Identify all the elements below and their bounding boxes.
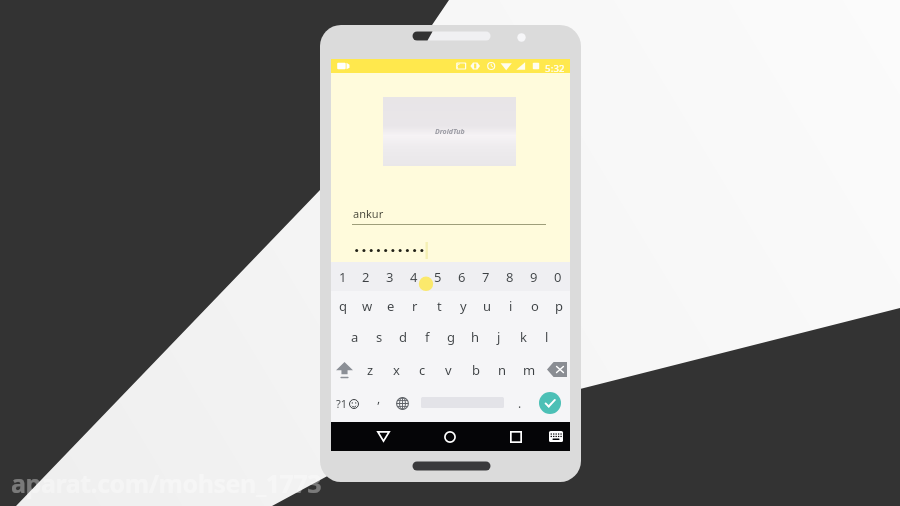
button[interactable]: v bbox=[435, 353, 462, 386]
button[interactable]: Change language bbox=[394, 395, 410, 411]
staticText: 8 bbox=[506, 268, 514, 286]
staticText: r bbox=[412, 297, 418, 315]
staticText: ankur bbox=[353, 206, 384, 221]
staticText: o bbox=[531, 297, 539, 315]
staticText: s bbox=[376, 328, 383, 346]
staticText: n bbox=[498, 361, 507, 379]
button[interactable]: c bbox=[409, 353, 435, 386]
button[interactable]: b bbox=[462, 353, 489, 386]
staticText: 3 bbox=[386, 268, 394, 286]
staticText: w bbox=[362, 297, 373, 315]
button[interactable]: d bbox=[391, 321, 415, 353]
button[interactable]: Home bbox=[433, 422, 467, 451]
staticText: 5:32 bbox=[545, 62, 565, 75]
button[interactable]: h bbox=[463, 321, 487, 353]
staticText: v bbox=[445, 361, 452, 379]
staticText: ?1 bbox=[336, 396, 348, 411]
staticText: aparat.com/mohsen_1773 bbox=[11, 466, 322, 500]
staticText: i bbox=[509, 297, 513, 315]
button[interactable]: Recents bbox=[499, 422, 533, 451]
staticText: f bbox=[425, 328, 430, 346]
staticText: l bbox=[545, 328, 549, 346]
staticText: 0 bbox=[554, 268, 562, 286]
staticText: j bbox=[497, 328, 501, 346]
button[interactable]: 7 bbox=[474, 262, 498, 291]
staticText: 1 bbox=[339, 268, 347, 286]
button[interactable]: 2 bbox=[354, 262, 378, 291]
staticText: c bbox=[419, 361, 426, 379]
staticText: 6 bbox=[458, 268, 466, 286]
staticText: . bbox=[518, 395, 522, 411]
staticText: m bbox=[523, 361, 536, 379]
staticText: p bbox=[555, 297, 563, 315]
button[interactable]: 8 bbox=[498, 262, 522, 291]
button[interactable]: 5 bbox=[426, 262, 450, 291]
button[interactable]: . bbox=[512, 395, 528, 411]
button[interactable]: o bbox=[523, 291, 547, 321]
button[interactable]: 0 bbox=[546, 262, 570, 291]
staticText: z bbox=[367, 361, 374, 379]
button[interactable]: 3 bbox=[378, 262, 402, 291]
staticText: g bbox=[447, 328, 455, 346]
button[interactable]: j bbox=[487, 321, 511, 353]
button[interactable]: Switch keyboard bbox=[540, 422, 571, 451]
button[interactable]: l bbox=[535, 321, 559, 353]
button[interactable]: s bbox=[367, 321, 391, 353]
button[interactable]: , bbox=[371, 393, 387, 409]
staticText: b bbox=[472, 361, 480, 379]
staticText: y bbox=[460, 297, 467, 315]
button[interactable]: q bbox=[331, 291, 355, 321]
button[interactable]: z bbox=[357, 353, 383, 386]
button[interactable]: m bbox=[516, 353, 543, 386]
staticText: h bbox=[471, 328, 480, 346]
button[interactable]: 9 bbox=[522, 262, 546, 291]
button[interactable]: w bbox=[355, 291, 379, 321]
button[interactable]: Done bbox=[539, 392, 561, 414]
staticText: t bbox=[437, 297, 442, 315]
staticText: a bbox=[351, 328, 359, 346]
staticText: , bbox=[377, 390, 381, 406]
button[interactable]: a bbox=[343, 321, 367, 353]
button[interactable]: Shift bbox=[331, 353, 357, 386]
staticText: 4 bbox=[410, 268, 418, 286]
staticText: 9 bbox=[530, 268, 538, 286]
button[interactable]: f bbox=[415, 321, 439, 353]
staticText: q bbox=[339, 297, 347, 315]
button[interactable]: y bbox=[451, 291, 475, 321]
staticText: 7 bbox=[482, 268, 490, 286]
button[interactable]: Back bbox=[366, 422, 400, 451]
staticText: 5 bbox=[434, 268, 442, 286]
button[interactable]: 4 bbox=[402, 262, 426, 291]
button[interactable]: x bbox=[383, 353, 409, 386]
button[interactable]: g bbox=[439, 321, 463, 353]
button[interactable]: p bbox=[547, 291, 570, 321]
staticText: 2 bbox=[362, 268, 370, 286]
staticText: d bbox=[399, 328, 407, 346]
staticText: k bbox=[520, 328, 527, 346]
staticText: DroidTub bbox=[435, 127, 465, 137]
button[interactable]: i bbox=[499, 291, 523, 321]
staticText: e bbox=[387, 297, 395, 315]
staticText: x bbox=[393, 361, 400, 379]
button[interactable]: n bbox=[489, 353, 516, 386]
button[interactable]: r bbox=[403, 291, 427, 321]
button[interactable]: ?1 bbox=[336, 395, 366, 412]
button[interactable]: t bbox=[427, 291, 451, 321]
button[interactable]: e bbox=[379, 291, 403, 321]
button[interactable]: 1 bbox=[331, 262, 354, 291]
button[interactable]: Backspace bbox=[543, 353, 570, 386]
button[interactable]: 6 bbox=[450, 262, 474, 291]
button[interactable]: k bbox=[511, 321, 535, 353]
staticText: u bbox=[483, 297, 492, 315]
button[interactable]: u bbox=[475, 291, 499, 321]
